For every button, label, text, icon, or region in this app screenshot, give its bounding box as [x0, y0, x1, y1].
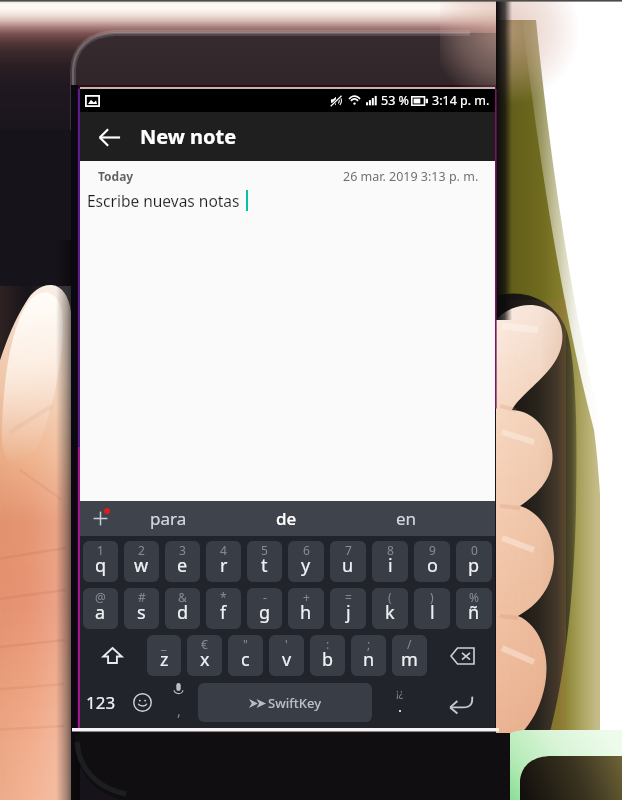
staticText: b — [322, 647, 334, 672]
staticText: ¡¿ — [396, 686, 404, 700]
button[interactable]: 8 — [372, 541, 408, 582]
staticText: ' — [285, 636, 288, 652]
button[interactable]: de — [236, 501, 336, 536]
staticText: h — [300, 600, 312, 625]
staticText: x — [200, 647, 210, 672]
staticText: y — [301, 553, 311, 578]
button[interactable]: 2 — [124, 541, 159, 582]
button[interactable]: ( — [372, 588, 408, 629]
staticText: 5 — [261, 542, 268, 558]
button[interactable]: 3 — [165, 541, 200, 582]
button[interactable]: & — [165, 588, 200, 629]
staticText: 123 — [86, 691, 116, 714]
button[interactable]: € — [187, 635, 222, 676]
staticText: p — [468, 553, 480, 578]
button[interactable]: 5 — [247, 541, 282, 582]
staticText: v — [282, 647, 292, 672]
staticText: 7 — [345, 542, 352, 558]
button[interactable]: Add clipboard — [80, 501, 122, 536]
button[interactable]: = — [330, 588, 366, 629]
button[interactable]: : — [310, 635, 345, 676]
button[interactable]: % — [456, 588, 492, 629]
button[interactable]: 9 — [414, 541, 450, 582]
staticText: c — [241, 647, 250, 672]
button[interactable]: para — [118, 501, 218, 536]
staticText: para — [150, 507, 187, 530]
staticText: 2 — [138, 542, 145, 558]
button[interactable]: Shift — [80, 632, 144, 679]
button[interactable]: ' — [269, 635, 304, 676]
staticText: 26 mar. 2019 3:13 p. m. — [343, 168, 479, 185]
staticText: 1 — [97, 542, 104, 558]
staticText: ñ — [468, 600, 480, 625]
staticText: 53 % — [381, 92, 409, 109]
staticText: a — [95, 600, 106, 625]
staticText: g — [259, 600, 271, 625]
staticText: l — [430, 600, 435, 625]
staticText: ) — [430, 589, 434, 605]
staticText: 3:14 p. m. — [432, 92, 490, 109]
button[interactable]: Back — [85, 113, 133, 161]
staticText: 4 — [220, 542, 227, 558]
button[interactable]: Voice input — [162, 679, 195, 726]
button[interactable]: Enter — [425, 679, 495, 726]
button[interactable]: 7 — [330, 541, 366, 582]
button[interactable]: * — [206, 588, 241, 629]
button[interactable]: Emoji — [122, 679, 162, 726]
button[interactable]: # — [124, 588, 159, 629]
staticText: en — [396, 507, 417, 530]
staticText: m — [401, 647, 418, 672]
button[interactable]: 4 — [206, 541, 241, 582]
staticText: : — [326, 636, 330, 652]
staticText: z — [160, 647, 169, 672]
staticText: de — [276, 507, 297, 530]
staticText: n — [363, 647, 375, 672]
staticText: f — [220, 600, 227, 625]
button[interactable]: ; — [351, 635, 386, 676]
staticText: _ — [161, 636, 167, 652]
staticText: o — [427, 553, 438, 578]
staticText: - — [263, 589, 267, 605]
staticText: t — [261, 553, 268, 578]
staticText: i — [388, 553, 393, 578]
button[interactable]: _ — [147, 635, 181, 676]
staticText: # — [138, 589, 146, 605]
button[interactable]: Backspace — [430, 632, 495, 679]
staticText: + — [303, 589, 310, 605]
staticText: s — [137, 600, 146, 625]
staticText: New note — [140, 123, 237, 150]
staticText: ; — [367, 636, 371, 652]
staticText: e — [177, 553, 188, 578]
staticText: ( — [388, 589, 392, 605]
staticText: , — [177, 701, 181, 720]
staticText: k — [385, 600, 395, 625]
staticText: = — [345, 589, 352, 605]
staticText: SwiftKey — [268, 694, 322, 712]
staticText: " — [243, 636, 248, 652]
button[interactable]: 123 — [80, 679, 122, 726]
staticText: @ — [95, 589, 106, 605]
staticText: & — [178, 589, 187, 605]
button[interactable]: ¡¿ — [375, 679, 425, 726]
staticText: % — [469, 589, 479, 605]
staticText: d — [177, 600, 189, 625]
staticText: Today — [98, 168, 134, 184]
staticText: u — [342, 553, 354, 578]
staticText: * — [220, 589, 227, 605]
button[interactable]: / — [392, 635, 427, 676]
button[interactable]: en — [356, 501, 456, 536]
button[interactable]: - — [247, 588, 282, 629]
button[interactable]: 0 — [456, 541, 492, 582]
button[interactable]: " — [228, 635, 263, 676]
button[interactable]: 1 — [83, 541, 118, 582]
staticText: € — [201, 636, 208, 652]
staticText: 0 — [471, 542, 478, 558]
button[interactable]: ) — [414, 588, 450, 629]
button[interactable]: + — [288, 588, 324, 629]
button[interactable]: 6 — [288, 541, 324, 582]
staticText: 9 — [429, 542, 436, 558]
button[interactable]: SwiftKey — [198, 683, 372, 722]
button[interactable]: @ — [83, 588, 118, 629]
staticText: r — [220, 553, 228, 578]
staticText: 8 — [387, 542, 394, 558]
